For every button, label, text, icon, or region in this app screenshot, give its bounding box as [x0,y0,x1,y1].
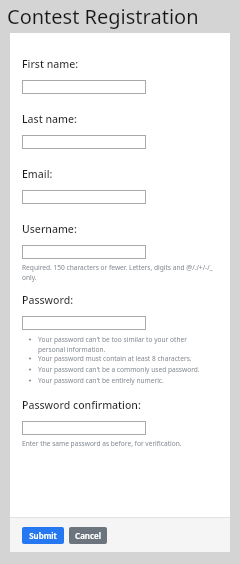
staticText: First name: [22,57,79,71]
button[interactable] [22,421,146,435]
staticText: Last name: [22,112,77,126]
button[interactable]: Cancel [69,527,107,544]
staticText: Email: [22,167,53,181]
staticText: Username: [22,222,77,236]
button[interactable] [22,135,146,149]
staticText: Contest Registration [7,3,199,30]
staticText: Cancel [75,530,101,541]
button[interactable] [22,80,146,94]
staticText: Enter the same password as before, for v… [22,439,182,448]
button[interactable] [22,245,146,259]
staticText: Required. 150 characters or fewer. Lette… [22,263,218,281]
staticText: Submit [29,530,57,541]
staticText: Your password can't be entirely numeric. [38,376,206,385]
staticText: Your password must contain at least 8 ch… [38,354,206,363]
button[interactable] [22,190,146,204]
button[interactable] [22,316,146,330]
staticText: Your password can't be a commonly used p… [38,365,206,374]
button[interactable]: Submit [22,527,64,544]
staticText: Password confirmation: [22,398,141,412]
staticText: Your password can't be too similar to yo… [38,335,206,353]
staticText: Password: [22,293,74,307]
